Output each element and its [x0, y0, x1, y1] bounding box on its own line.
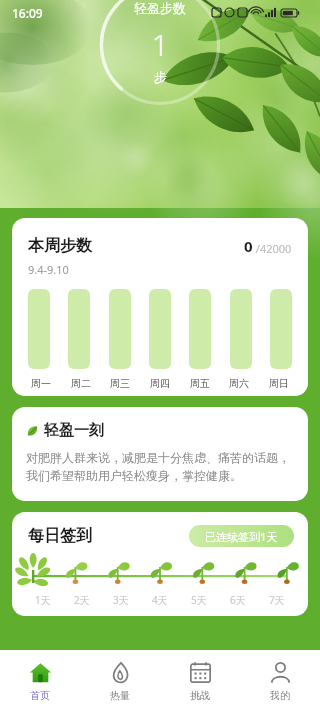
button[interactable]: 挑战	[160, 650, 240, 712]
staticText: 7天	[269, 593, 285, 607]
staticText: 16:09	[12, 5, 43, 21]
staticText: 挑战	[190, 689, 210, 702]
staticText: 2天	[74, 593, 90, 607]
button[interactable]: 每日签到	[12, 512, 308, 616]
staticText: 轻盈步数	[134, 0, 186, 16]
staticText: 热量	[110, 689, 130, 702]
staticText: 周二	[71, 377, 91, 390]
staticText: 轻盈一刻	[44, 421, 104, 440]
button[interactable]: 首页	[0, 650, 80, 712]
staticText: 已连续签到1天	[205, 529, 278, 544]
staticText: 1天	[35, 593, 51, 607]
staticText: 1	[151, 24, 169, 65]
staticText: 我的	[270, 689, 290, 702]
staticText: 对肥胖人群来说，减肥是十分焦虑、痛苦的话题，我们希望帮助用户轻松瘦身，掌控健康。	[26, 450, 294, 484]
button[interactable]: 热量	[80, 650, 160, 712]
staticText: 3天	[113, 593, 129, 607]
staticText: 周三	[110, 377, 130, 390]
staticText: 步	[154, 69, 167, 85]
staticText: 4天	[152, 593, 168, 607]
button[interactable]: 轻盈一刻	[12, 407, 308, 501]
staticText: 9.4-9.10	[28, 262, 69, 277]
staticText: 每日签到	[28, 526, 92, 546]
button[interactable]: 本周步数	[12, 218, 308, 396]
staticText: 5天	[191, 593, 207, 607]
button[interactable]: 已连续签到1天	[189, 525, 294, 547]
staticText: 0	[244, 236, 253, 256]
staticText: 本周步数	[28, 236, 92, 256]
staticText: /42000	[253, 241, 292, 256]
staticText: 6天	[230, 593, 246, 607]
staticText: 首页	[30, 689, 50, 702]
staticText: 周一	[31, 377, 51, 390]
staticText: 周六	[229, 377, 249, 390]
staticText: 周四	[150, 377, 170, 390]
staticText: 周五	[190, 377, 210, 390]
button[interactable]: 我的	[240, 650, 320, 712]
staticText: 周日	[269, 377, 289, 390]
